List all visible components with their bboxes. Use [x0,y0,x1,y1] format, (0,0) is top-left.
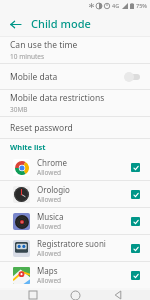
staticText: Allowed [37,222,62,231]
staticText: Orologio [37,184,70,195]
button[interactable]: Allowed checkbox [131,190,140,199]
button[interactable]: Musica [0,208,150,234]
staticText: Allowed [37,276,62,285]
staticText: 30MB [10,105,28,114]
staticText: Allowed [37,168,62,177]
staticText: Reset password [10,122,73,134]
staticText: Mobile data restrictions [10,92,105,104]
button[interactable]: Registratore suoni [0,235,150,261]
button[interactable]: Recent apps [23,290,43,300]
staticText: Child mode [31,16,91,31]
button[interactable]: Home [65,290,85,300]
staticText: Mobile data [10,71,124,83]
button[interactable]: Reset password [0,117,150,138]
staticText: Registratore suoni [37,238,106,249]
staticText: Can use the time [10,39,78,51]
button[interactable]: Can use the time [0,37,150,63]
button[interactable]: Back [108,290,128,300]
button[interactable]: Allowed checkbox [131,244,140,253]
button[interactable]: Allowed checkbox [131,217,140,226]
staticText: 75% [136,2,147,9]
staticText: 4G [112,2,120,9]
button[interactable]: Maps [0,262,150,288]
staticText: Musica [37,211,64,222]
button[interactable]: Allowed checkbox [131,163,140,172]
button[interactable]: Mobile data restrictions [0,90,150,116]
staticText: Allowed [37,195,62,204]
staticText: White list [10,142,46,152]
button[interactable]: Back [6,15,24,33]
button[interactable]: Allowed checkbox [131,271,140,280]
button[interactable]: Orologio [0,181,150,207]
staticText: Maps [37,265,58,276]
staticText: 10 minutes [10,52,45,61]
staticText: Allowed [37,249,62,258]
button[interactable]: Chrome [0,154,150,180]
button[interactable]: Mobile data [0,64,150,89]
staticText: Chrome [37,157,67,168]
